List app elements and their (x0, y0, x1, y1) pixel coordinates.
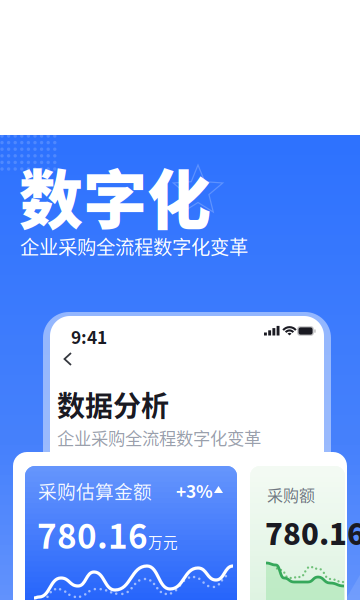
staticText: 企业采购全流程数字化变革 (20, 232, 248, 260)
staticText: 780.16 (37, 510, 148, 558)
staticText: 采购额 (267, 483, 315, 506)
staticText: +3% (176, 478, 213, 503)
staticText: 780.16 (265, 511, 360, 553)
staticText: 万元 (148, 531, 178, 552)
staticText: 数据分析 (57, 384, 169, 424)
staticText: 9:41 (71, 324, 107, 349)
staticText: 采购估算金额 (38, 477, 152, 504)
staticText: 企业采购全流程数字化变革 (57, 425, 261, 450)
staticText: 数字化 (19, 149, 211, 242)
